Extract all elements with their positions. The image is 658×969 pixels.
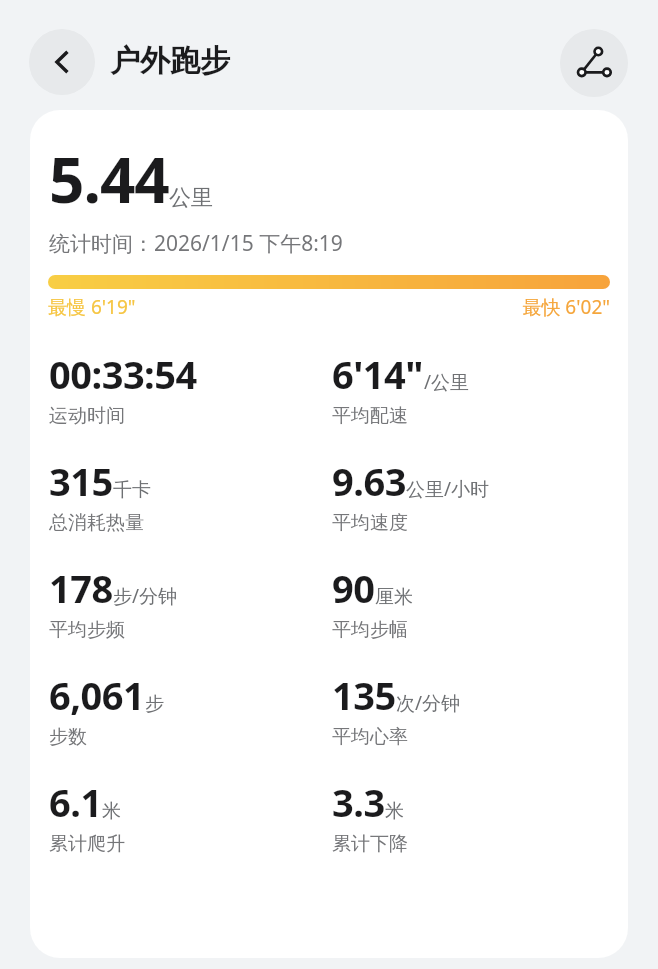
staticText: 6,061 xyxy=(49,669,145,721)
staticText: 总消耗热量 xyxy=(49,511,144,535)
staticText: 步数 xyxy=(49,725,87,749)
staticText: 米 xyxy=(102,799,121,823)
staticText: 平均心率 xyxy=(332,725,408,749)
button[interactable]: 6.1 xyxy=(49,776,332,856)
staticText: 9.63 xyxy=(332,455,406,507)
button[interactable]: Back xyxy=(29,29,95,95)
staticText: 统计时间：2026/1/15 下午8:19 xyxy=(49,229,343,258)
staticText: 135 xyxy=(332,669,396,721)
staticText: 178 xyxy=(49,562,113,614)
staticText: /公里 xyxy=(424,369,470,395)
staticText: 3.3 xyxy=(332,776,385,828)
staticText: 6'14" xyxy=(332,348,424,400)
staticText: 最快 6'02" xyxy=(522,294,610,320)
staticText: 平均速度 xyxy=(332,511,408,535)
button[interactable]: Share xyxy=(560,29,628,97)
button[interactable]: 9.63 xyxy=(332,455,612,535)
button[interactable]: 00:33:54 xyxy=(49,348,332,428)
staticText: 315 xyxy=(49,455,113,507)
staticText: 累计爬升 xyxy=(49,832,125,856)
button[interactable]: 6,061 xyxy=(49,669,332,749)
staticText: 5.44 xyxy=(49,137,169,221)
button[interactable]: 6'14" xyxy=(332,348,612,428)
button[interactable]: 3.3 xyxy=(332,776,612,856)
staticText: 90 xyxy=(332,562,375,614)
staticText: 平均配速 xyxy=(332,404,408,428)
staticText: 平均步幅 xyxy=(332,618,408,642)
staticText: 累计下降 xyxy=(332,832,408,856)
staticText: 最慢 6'19" xyxy=(48,294,136,320)
staticText: 公里 xyxy=(169,184,213,212)
staticText: 00:33:54 xyxy=(49,348,197,400)
staticText: 步 xyxy=(145,692,164,716)
staticText: 平均步频 xyxy=(49,618,125,642)
staticText: 步/分钟 xyxy=(113,583,178,609)
staticText: 厘米 xyxy=(375,585,413,609)
staticText: 米 xyxy=(385,799,404,823)
staticText: 公里/小时 xyxy=(406,476,490,502)
button[interactable]: 178 xyxy=(49,562,332,642)
staticText: 千卡 xyxy=(113,478,151,502)
button[interactable]: 315 xyxy=(49,455,332,535)
button[interactable]: 135 xyxy=(332,669,612,749)
staticText: 运动时间 xyxy=(49,404,125,428)
staticText: 6.1 xyxy=(49,776,102,828)
staticText: 户外跑步 xyxy=(110,42,230,80)
staticText: 次/分钟 xyxy=(396,690,461,716)
button[interactable]: 90 xyxy=(332,562,612,642)
